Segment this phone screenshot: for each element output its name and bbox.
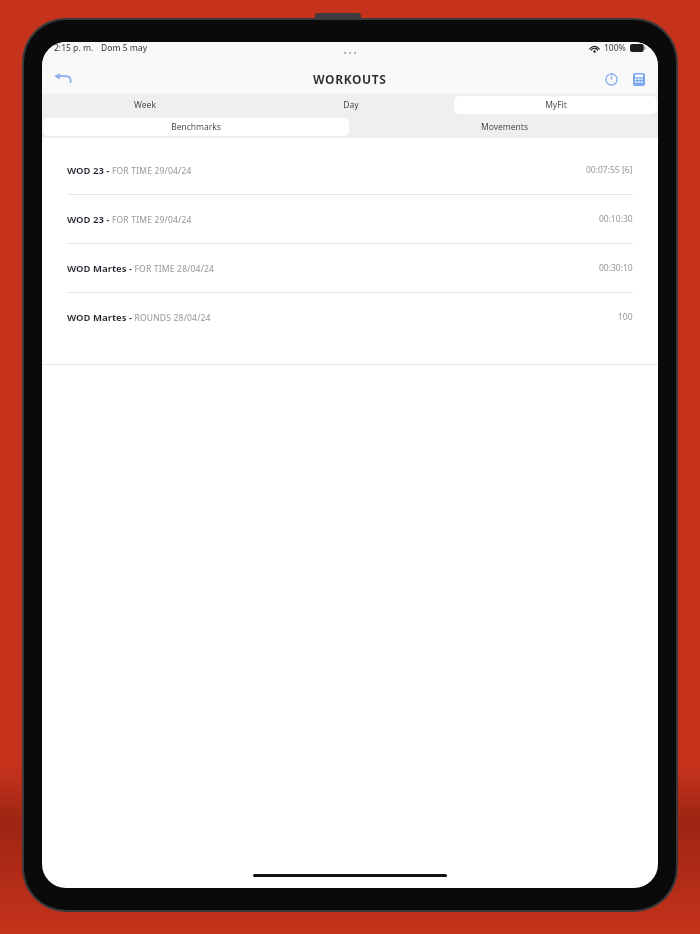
- button[interactable]: WOD Martes - FOR TIME 28/04/24: [42, 244, 658, 292]
- staticText: Week: [134, 99, 156, 111]
- button[interactable]: Benchmarks: [43, 118, 349, 136]
- staticText: 00:07:55 [6]: [586, 164, 633, 176]
- button[interactable]: Calculator: [626, 66, 652, 92]
- staticText: 100%: [604, 42, 626, 54]
- button[interactable]: MyFit: [454, 96, 657, 114]
- staticText: Dom 5 may: [101, 42, 148, 54]
- button[interactable]: WOD 23 - FOR TIME 29/04/24: [42, 195, 658, 243]
- button[interactable]: Timer: [598, 66, 624, 92]
- button[interactable]: Movements: [351, 118, 657, 136]
- button[interactable]: Day: [249, 96, 452, 114]
- staticText: Day: [343, 99, 359, 111]
- staticText: MyFit: [545, 99, 567, 111]
- staticText: WOD Martes - FOR TIME 28/04/24: [67, 262, 215, 275]
- button[interactable]: Back: [48, 64, 78, 94]
- button[interactable]: WOD 23 - FOR TIME 29/04/24: [42, 146, 658, 194]
- staticText: Benchmarks: [171, 121, 221, 133]
- staticText: WOD Martes - ROUNDS 28/04/24: [67, 311, 211, 324]
- staticText: WOD 23 - FOR TIME 29/04/24: [67, 213, 192, 226]
- staticText: 100: [618, 311, 633, 323]
- staticText: WORKOUTS: [313, 71, 387, 87]
- staticText: 00:30:10: [599, 262, 633, 274]
- button[interactable]: WOD Martes - ROUNDS 28/04/24: [42, 293, 658, 341]
- staticText: 00:10:30: [599, 213, 633, 225]
- staticText: 2:15 p. m.: [54, 42, 94, 54]
- staticText: WOD 23 - FOR TIME 29/04/24: [67, 164, 192, 177]
- button[interactable]: Week: [43, 96, 247, 114]
- staticText: Movements: [481, 121, 528, 133]
